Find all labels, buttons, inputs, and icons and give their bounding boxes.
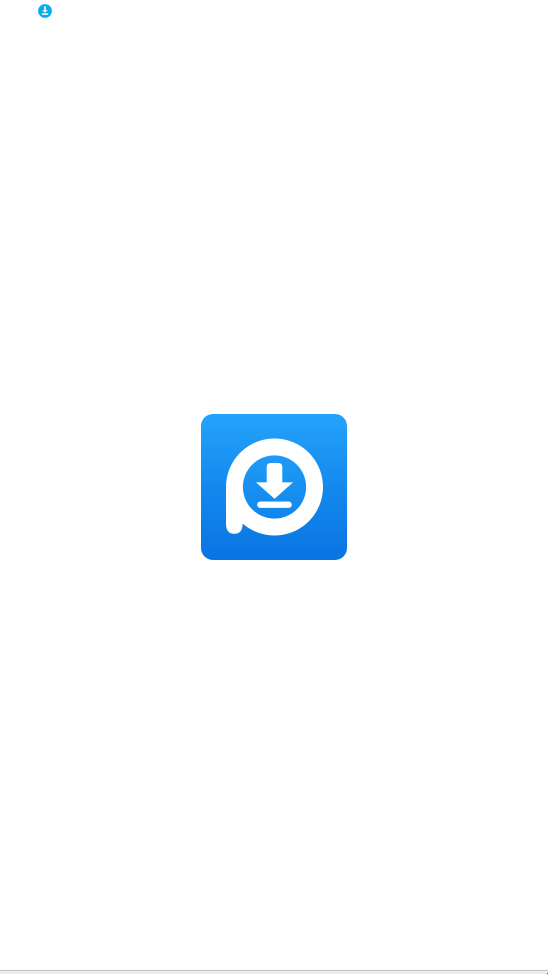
button[interactable]: Downloads (34, 0, 56, 22)
